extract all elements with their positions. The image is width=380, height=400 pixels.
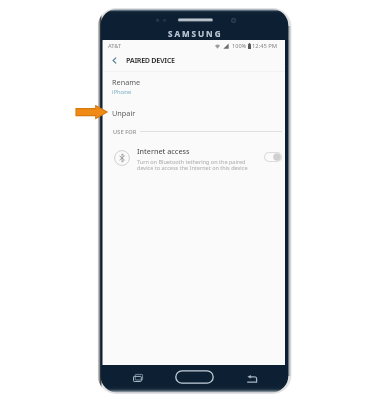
staticText: USE FOR [113,128,137,136]
staticText: Rename [112,77,141,87]
staticText: SAMSUNG [168,28,223,37]
button[interactable]: Back [239,365,264,390]
button[interactable]: Rename [103,72,285,102]
staticText: 100% [232,42,247,50]
button[interactable]: Home [175,370,214,384]
staticText: PAIRED DEVICE [126,55,175,65]
staticText: AT&T [108,42,122,50]
staticText: iPhone [112,88,132,96]
staticText: Turn on Bluetooth tethering on the paire… [137,158,248,172]
button[interactable]: Unpair [103,102,285,124]
button[interactable]: Internet access toggle [264,152,282,162]
staticText: Unpair [112,108,136,118]
button[interactable]: Back [103,50,126,70]
staticText: Internet access [137,146,190,156]
staticText: 12:45 PM [252,42,278,50]
button[interactable]: Internet access [103,139,285,172]
button[interactable]: Recents [124,365,149,390]
